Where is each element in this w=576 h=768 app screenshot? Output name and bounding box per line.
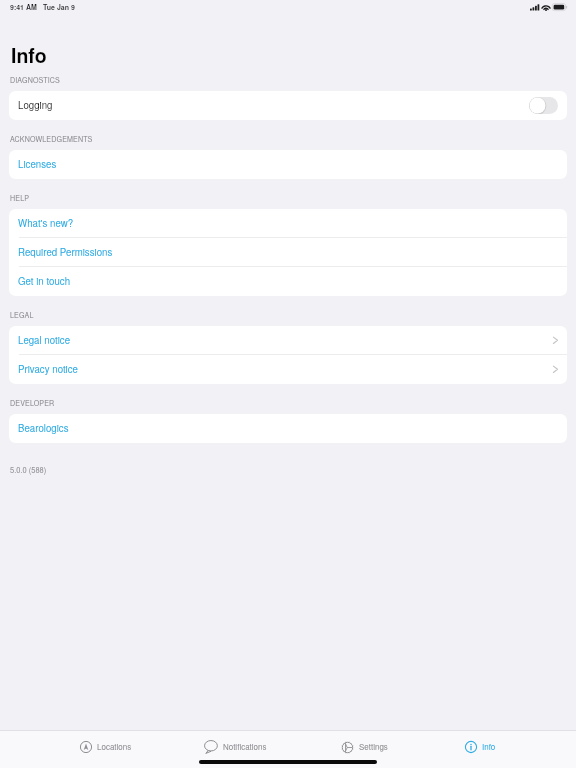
staticText: Info bbox=[11, 41, 47, 69]
staticText: HELP bbox=[10, 193, 30, 203]
staticText: Privacy notice bbox=[18, 362, 79, 376]
staticText: What's new? bbox=[18, 216, 74, 230]
staticText: DEVELOPER bbox=[10, 398, 55, 408]
button[interactable]: Licenses bbox=[9, 150, 567, 179]
staticText: Notifications bbox=[223, 741, 267, 752]
staticText: Info bbox=[482, 741, 496, 752]
staticText: 5.0.0 (588) bbox=[10, 464, 47, 475]
staticText: Settings bbox=[359, 741, 388, 752]
staticText: Tue Jan 9 bbox=[43, 2, 75, 12]
staticText: Bearologics bbox=[18, 421, 69, 435]
staticText: ACKNOWLEDGEMENTS bbox=[10, 134, 93, 144]
button[interactable]: What's new? bbox=[9, 209, 567, 238]
staticText: Licenses bbox=[18, 157, 57, 171]
button[interactable]: Locations bbox=[80, 736, 132, 756]
button[interactable]: Logging toggle bbox=[529, 97, 558, 114]
button[interactable]: Logging bbox=[9, 91, 567, 120]
button[interactable]: Settings bbox=[341, 736, 388, 756]
staticText: DIAGNOSTICS bbox=[10, 75, 60, 85]
staticText: LEGAL bbox=[10, 310, 34, 320]
staticText: Legal notice bbox=[18, 333, 71, 347]
staticText: Required Permissions bbox=[18, 245, 113, 259]
staticText: Locations bbox=[97, 741, 132, 752]
button[interactable]: Bearologics bbox=[9, 414, 567, 443]
staticText: Get in touch bbox=[18, 274, 71, 288]
button[interactable]: Legal notice bbox=[9, 326, 567, 355]
staticText: Logging bbox=[18, 98, 53, 112]
button[interactable]: Get in touch bbox=[9, 267, 567, 296]
button[interactable]: Privacy notice bbox=[9, 355, 567, 384]
staticText: 9:41 AM bbox=[10, 2, 37, 12]
button[interactable]: Notifications bbox=[204, 736, 267, 756]
button[interactable]: Info bbox=[465, 736, 496, 756]
button[interactable]: Required Permissions bbox=[9, 238, 567, 267]
